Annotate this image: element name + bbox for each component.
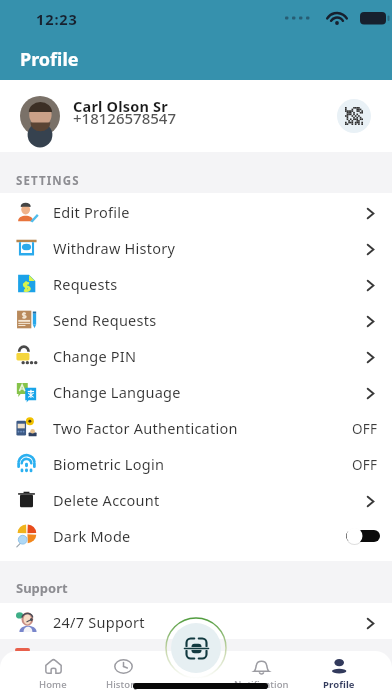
staticText: OFF <box>352 420 378 438</box>
button[interactable]: Scan <box>165 617 227 679</box>
staticText: Withdraw History <box>53 238 176 258</box>
staticText: Delete Account <box>53 490 160 510</box>
button[interactable]: Withdraw History <box>0 229 392 265</box>
staticText: Requests <box>53 274 118 294</box>
staticText: Change Language <box>53 382 181 402</box>
button[interactable]: Send Requests <box>0 301 392 337</box>
button[interactable]: Show QR code <box>337 99 371 133</box>
button[interactable]: 24/7 Support <box>0 603 392 639</box>
button[interactable]: Notification <box>223 655 299 691</box>
staticText: +18126578547 <box>73 108 176 128</box>
staticText: 24/7 Support <box>53 612 145 632</box>
button[interactable]: Profile <box>301 655 377 691</box>
staticText: Send Requests <box>53 310 157 330</box>
button[interactable]: Biometric Login <box>0 445 392 481</box>
staticText: Notification <box>234 678 289 691</box>
button[interactable]: Edit Profile <box>0 193 392 229</box>
button[interactable]: History <box>85 655 161 691</box>
button[interactable]: Two Factor Authentication <box>0 409 392 445</box>
button[interactable]: Carl Olson Sr <box>0 80 392 152</box>
staticText: Biometric Login <box>53 454 165 474</box>
staticText: Profile <box>20 47 79 72</box>
button[interactable]: Dark Mode <box>0 517 392 553</box>
staticText: Support <box>16 579 68 597</box>
button[interactable]: Home <box>15 655 91 691</box>
staticText: History <box>106 678 140 691</box>
staticText: 12:23 <box>36 9 78 29</box>
staticText: Edit Profile <box>53 202 130 222</box>
button[interactable]: Change PIN <box>0 337 392 373</box>
staticText: Change PIN <box>53 346 137 366</box>
staticText: OFF <box>352 456 378 474</box>
button[interactable]: Change Language <box>0 373 392 409</box>
staticText: Home <box>39 678 67 691</box>
staticText: Two Factor Authentication <box>53 418 238 438</box>
staticText: Dark Mode <box>53 526 131 546</box>
button[interactable]: Requests <box>0 265 392 301</box>
staticText: SETTINGS <box>16 173 80 189</box>
button[interactable]: Delete Account <box>0 481 392 517</box>
staticText: Profile <box>323 678 355 691</box>
staticText: Carl Olson Sr <box>73 96 168 116</box>
